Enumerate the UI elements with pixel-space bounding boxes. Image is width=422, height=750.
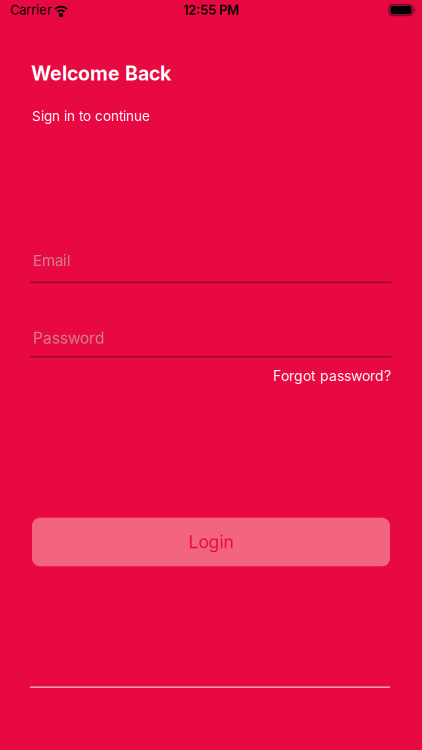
staticText: Welcome Back bbox=[31, 62, 171, 85]
staticText: 12:55 PM bbox=[183, 2, 239, 18]
staticText: Password bbox=[33, 329, 104, 347]
staticText: Login bbox=[188, 531, 233, 553]
button[interactable]: Forgot password? bbox=[273, 367, 391, 384]
staticText: Forgot password? bbox=[273, 367, 391, 384]
button[interactable]: Login bbox=[32, 518, 390, 566]
staticText: Email bbox=[33, 251, 71, 269]
staticText: Carrier bbox=[10, 2, 52, 18]
staticText: Sign in to continue bbox=[32, 108, 150, 124]
